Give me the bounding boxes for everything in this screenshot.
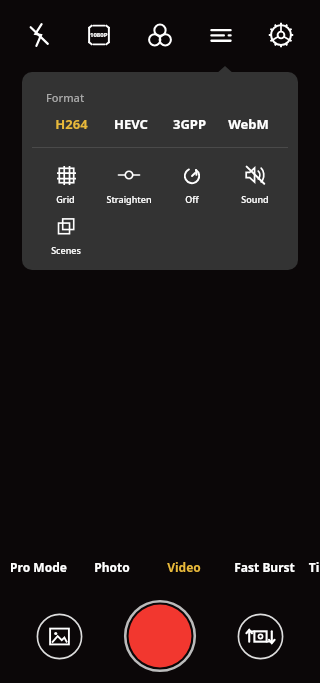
- staticText: Format: [46, 90, 85, 105]
- staticText: HEVC: [114, 115, 148, 133]
- button[interactable]: Fast Burst: [220, 552, 308, 582]
- button[interactable]: Sound: [223, 162, 286, 205]
- button[interactable]: Record: [123, 599, 197, 673]
- button[interactable]: H264: [42, 115, 101, 133]
- button[interactable]: Flash off: [17, 13, 61, 57]
- staticText: 3GPP: [173, 115, 206, 133]
- staticText: Video: [167, 559, 201, 575]
- button[interactable]: More settings: [199, 13, 243, 57]
- staticText: Pro Mode: [10, 559, 67, 575]
- staticText: H264: [55, 115, 88, 133]
- button[interactable]: HEVC: [101, 115, 160, 133]
- button[interactable]: Filters: [138, 13, 182, 57]
- button[interactable]: WebM: [219, 115, 278, 133]
- button[interactable]: Video: [148, 552, 220, 582]
- staticText: WebM: [228, 115, 269, 133]
- staticText: 1080P: [90, 31, 108, 39]
- button[interactable]: Scenes: [34, 213, 97, 256]
- button[interactable]: Pro Mode: [0, 552, 76, 582]
- staticText: Time Lapse: [308, 559, 320, 575]
- staticText: Straighten: [106, 193, 152, 205]
- button[interactable]: Time Lapse: [308, 552, 320, 582]
- staticText: Sound: [241, 193, 269, 205]
- button[interactable]: Switch camera: [237, 613, 284, 660]
- staticText: Grid: [56, 193, 75, 205]
- button[interactable]: Grid: [34, 162, 97, 205]
- staticText: Off: [185, 193, 199, 205]
- button[interactable]: Resolution 1080P: [77, 13, 121, 57]
- button[interactable]: Gallery: [36, 613, 83, 660]
- button[interactable]: Straighten: [97, 162, 160, 205]
- staticText: Fast Burst: [234, 559, 295, 575]
- button[interactable]: Off: [160, 162, 223, 205]
- button[interactable]: Settings: [259, 13, 303, 57]
- button[interactable]: Photo: [76, 552, 148, 582]
- staticText: Photo: [94, 559, 130, 575]
- button[interactable]: 3GPP: [160, 115, 219, 133]
- staticText: Scenes: [51, 244, 81, 256]
